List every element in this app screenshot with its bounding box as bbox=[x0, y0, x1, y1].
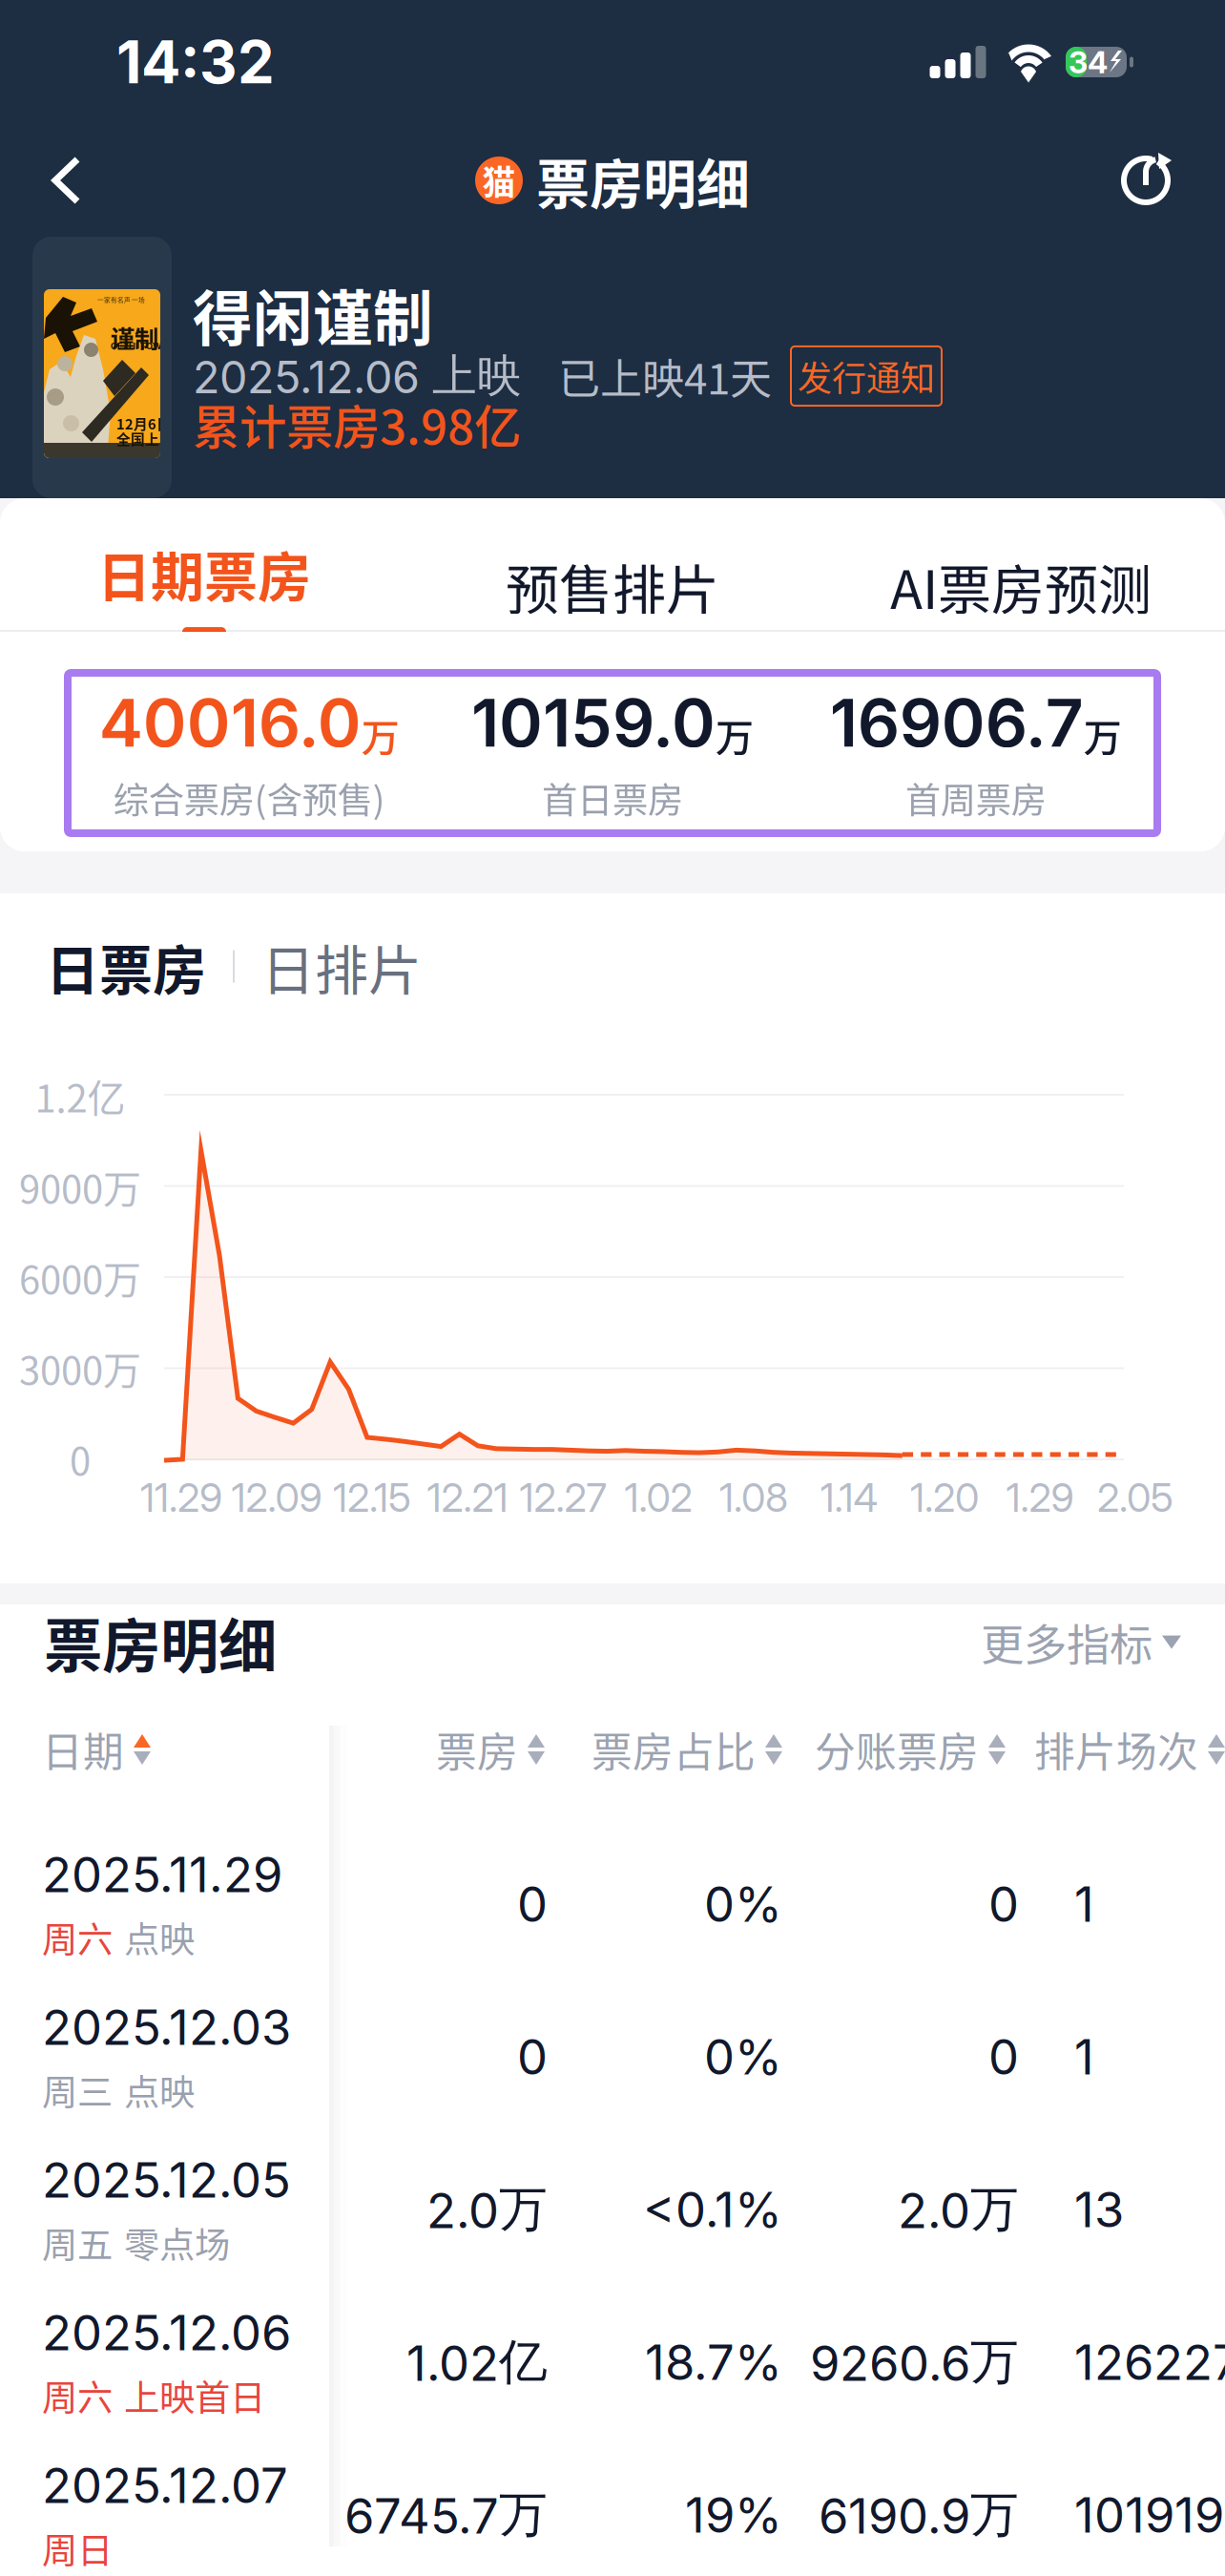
staticText: 票房明细 bbox=[536, 142, 750, 219]
button[interactable]: 日期票房 bbox=[0, 498, 408, 632]
staticText: 9260.6万 bbox=[810, 2332, 1019, 2393]
staticText: 点映 bbox=[124, 1911, 195, 1963]
button[interactable]: 分账票房 bbox=[782, 1704, 1006, 1795]
staticText: 0 bbox=[988, 1875, 1019, 1933]
staticText: 19% bbox=[685, 2486, 782, 2544]
staticText: 周六 bbox=[42, 1911, 113, 1963]
staticText: 发行通知 bbox=[798, 351, 935, 401]
button[interactable]: 日期 bbox=[0, 1704, 329, 1795]
staticText: 12月6日 bbox=[116, 413, 171, 434]
staticText: 更多指标 bbox=[981, 1611, 1152, 1673]
staticText: 2025.12.05 bbox=[42, 2151, 291, 2209]
staticText: 10159.0 bbox=[471, 682, 716, 762]
staticText: 2025.12.03 bbox=[42, 1998, 291, 2056]
staticText: 101919 bbox=[1074, 2486, 1224, 2544]
staticText: 日票房 bbox=[46, 928, 206, 1005]
staticText: 谨制 bbox=[111, 320, 158, 355]
staticText: 12.09 bbox=[231, 1474, 322, 1521]
staticText: 周三 bbox=[42, 2064, 113, 2116]
staticText: 票房明细 bbox=[44, 1600, 277, 1685]
staticText: 猫 bbox=[482, 156, 516, 204]
staticText: 126227 bbox=[1074, 2333, 1225, 2391]
staticText: 日期票房 bbox=[97, 534, 311, 612]
staticText: 综合票房(含预售) bbox=[113, 772, 385, 824]
staticText: 1.14 bbox=[820, 1474, 878, 1521]
staticText: 6190.9万 bbox=[819, 2484, 1019, 2545]
staticText: GEZHI TOWN bbox=[111, 341, 169, 352]
staticText: 1.29 bbox=[1006, 1474, 1074, 1521]
staticText: 13 bbox=[1074, 2180, 1124, 2239]
staticText: 2025.12.06 bbox=[42, 2303, 291, 2362]
staticText: 排片场次 bbox=[1034, 1720, 1198, 1779]
button[interactable]: 票房 bbox=[329, 1704, 545, 1795]
staticText: 2.0万 bbox=[426, 2179, 548, 2240]
staticText: 周六 bbox=[42, 2369, 113, 2421]
staticText: 6745.7万 bbox=[344, 2484, 548, 2545]
staticText: 18.7% bbox=[645, 2333, 782, 2391]
staticText: 3000万 bbox=[19, 1340, 141, 1395]
staticText: 得闲谨制 bbox=[193, 271, 433, 357]
staticText: 1.02 bbox=[624, 1474, 692, 1521]
staticText: 40016.0 bbox=[99, 682, 361, 762]
button[interactable]: 更多指标 bbox=[981, 1611, 1181, 1673]
staticText: 万 bbox=[716, 707, 754, 762]
staticText: 0% bbox=[704, 2027, 782, 2086]
staticText: 零点场 bbox=[124, 2217, 230, 2268]
staticText: 分账票房 bbox=[815, 1720, 979, 1779]
button[interactable]: 预售排片 bbox=[408, 498, 817, 632]
button[interactable]: 票房占比 bbox=[545, 1704, 782, 1795]
staticText: 2025.12.06 上映 bbox=[193, 348, 522, 404]
staticText: 1.20 bbox=[910, 1474, 979, 1521]
staticText: 0 bbox=[70, 1431, 91, 1486]
staticText: 周日 bbox=[42, 2522, 113, 2574]
staticText: 2.0万 bbox=[898, 2179, 1019, 2240]
staticText: 9000万 bbox=[19, 1159, 141, 1214]
staticText: 万 bbox=[361, 707, 400, 762]
staticText: 1.08 bbox=[719, 1474, 788, 1521]
staticText: 首日票房 bbox=[542, 772, 683, 824]
staticText: 12.15 bbox=[333, 1474, 411, 1521]
staticText: 2.05 bbox=[1097, 1474, 1173, 1521]
staticText: <0.1% bbox=[643, 2180, 782, 2239]
staticText: 16906.7 bbox=[830, 682, 1084, 762]
button[interactable]: Share bbox=[1091, 136, 1225, 225]
button[interactable]: Back bbox=[0, 137, 113, 223]
staticText: 票房 bbox=[436, 1720, 518, 1779]
staticText: 1.2亿 bbox=[35, 1068, 125, 1123]
staticText: 34 bbox=[1069, 44, 1108, 80]
staticText: AI票房预测 bbox=[890, 547, 1152, 625]
staticText: 0 bbox=[517, 2027, 548, 2086]
button[interactable]: 发行通知 bbox=[791, 346, 942, 406]
staticText: 0 bbox=[988, 2027, 1019, 2086]
staticText: 点映 bbox=[124, 2064, 195, 2116]
button[interactable]: AI票房预测 bbox=[817, 498, 1225, 632]
staticText: 12.27 bbox=[519, 1474, 606, 1521]
staticText: 上映首日 bbox=[124, 2369, 265, 2421]
staticText: 万 bbox=[1084, 707, 1122, 762]
staticText: 12.21 bbox=[427, 1474, 508, 1521]
staticText: 6000万 bbox=[19, 1249, 141, 1305]
staticText: 预售排片 bbox=[506, 547, 719, 625]
staticText: 1.02亿 bbox=[406, 2332, 548, 2393]
staticText: 周五 bbox=[42, 2217, 113, 2268]
staticText: 票房占比 bbox=[592, 1720, 756, 1779]
staticText: 日期 bbox=[42, 1720, 124, 1779]
staticText: 全国上映 bbox=[116, 429, 174, 449]
staticText: 1 bbox=[1074, 1875, 1094, 1933]
staticText: 2025.12.07 bbox=[42, 2456, 288, 2515]
staticText: 11.29 bbox=[140, 1474, 222, 1521]
staticText: 14:32 bbox=[116, 27, 275, 97]
staticText: 0% bbox=[704, 1875, 782, 1933]
button[interactable]: 日票房 bbox=[46, 928, 206, 1005]
staticText: 累计票房3.98亿 bbox=[193, 390, 521, 458]
staticText: 首周票房 bbox=[905, 772, 1046, 824]
staticText: 一家有名声 一场 bbox=[97, 295, 145, 304]
button[interactable]: 排片场次 bbox=[1006, 1704, 1225, 1795]
staticText: 2025.11.29 bbox=[42, 1845, 282, 1904]
button[interactable]: 日排片 bbox=[261, 928, 422, 1005]
staticText: 日排片 bbox=[261, 928, 422, 1005]
staticText: 0 bbox=[517, 1875, 548, 1933]
staticText: 1 bbox=[1074, 2027, 1094, 2086]
staticText: 已上映41天 bbox=[558, 346, 772, 406]
